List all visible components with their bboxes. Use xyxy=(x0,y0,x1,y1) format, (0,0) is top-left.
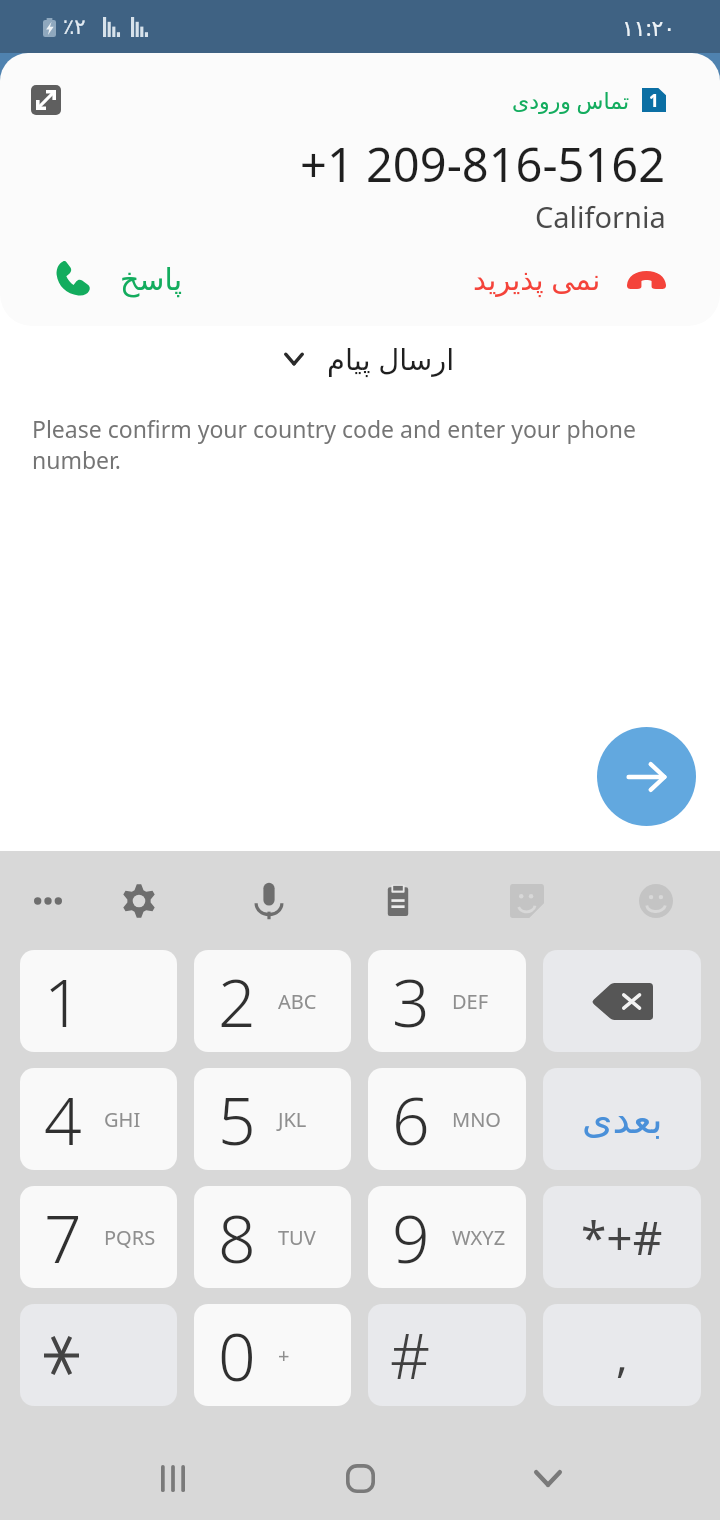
staticText: 6 xyxy=(392,1074,430,1164)
staticText: DEF xyxy=(452,988,489,1015)
button[interactable]: 9 xyxy=(368,1186,526,1288)
staticText: 2 xyxy=(218,956,256,1046)
button[interactable]: Emoji xyxy=(624,869,688,933)
staticText: + xyxy=(278,1342,290,1369)
button[interactable]: Expand xyxy=(31,85,61,115)
button[interactable]: *+# xyxy=(543,1186,701,1288)
button[interactable]: Clipboard xyxy=(366,869,430,933)
staticText: 7 xyxy=(44,1192,82,1282)
button[interactable]: Stickers xyxy=(495,869,559,933)
button[interactable]: نمی پذیرید xyxy=(473,259,666,301)
button[interactable]: 4 xyxy=(20,1068,177,1170)
button[interactable]: ارسال پیام xyxy=(0,326,720,390)
staticText: ارسال پیام xyxy=(327,339,455,378)
button[interactable]: Home xyxy=(322,1449,398,1507)
button[interactable]: 7 xyxy=(20,1186,177,1288)
staticText: تماس ورودی xyxy=(512,85,630,115)
button[interactable]: Next xyxy=(597,727,696,826)
button[interactable] xyxy=(20,1304,177,1406)
button[interactable]: 1 xyxy=(20,950,177,1052)
staticText: GHI xyxy=(104,1106,141,1133)
staticText: ABC xyxy=(278,988,317,1015)
button[interactable]: 6 xyxy=(368,1068,526,1170)
other: Backspace xyxy=(592,983,653,1020)
staticText: , xyxy=(616,1325,628,1385)
button[interactable]: , xyxy=(543,1304,701,1406)
staticText: 4 xyxy=(44,1074,82,1164)
button[interactable]: Voice input xyxy=(237,869,301,933)
button[interactable]: Recents xyxy=(135,1449,211,1507)
staticText: PQRS xyxy=(104,1224,156,1251)
button[interactable]: Backspace xyxy=(543,950,701,1052)
button[interactable]: 5 xyxy=(194,1068,351,1170)
staticText: JKL xyxy=(278,1106,307,1133)
staticText: Please confirm your country code and ent… xyxy=(32,413,692,476)
button[interactable]: پاسخ xyxy=(55,261,182,297)
staticText: 3 xyxy=(392,956,430,1046)
staticText: MNO xyxy=(452,1106,501,1133)
staticText: California xyxy=(535,197,666,236)
staticText: 8 xyxy=(218,1192,256,1282)
button[interactable]: # xyxy=(368,1304,526,1406)
button[interactable]: 3 xyxy=(368,950,526,1052)
staticText: ۱۱:۲۰ xyxy=(622,12,676,42)
staticText: ٪۲ xyxy=(63,15,86,39)
staticText: 0 xyxy=(218,1310,256,1400)
staticText: *+# xyxy=(581,1206,663,1269)
staticText: 5 xyxy=(218,1074,256,1164)
staticText: نمی پذیرید xyxy=(473,259,601,298)
staticText: TUV xyxy=(278,1224,316,1251)
button[interactable]: Settings xyxy=(107,869,171,933)
button[interactable]: Back xyxy=(510,1449,586,1507)
button[interactable]: More options xyxy=(16,869,80,933)
button[interactable]: 8 xyxy=(194,1186,351,1288)
staticText: WXYZ xyxy=(452,1224,506,1251)
staticText: پاسخ xyxy=(120,262,182,297)
button[interactable]: 0 xyxy=(194,1304,351,1406)
button[interactable]: بعدی xyxy=(543,1068,701,1170)
staticText: بعدی xyxy=(582,1097,663,1142)
staticText: 1 xyxy=(649,89,659,112)
staticText: 9 xyxy=(392,1192,430,1282)
staticText: +1 209-816-5162 xyxy=(300,132,666,196)
button[interactable]: 2 xyxy=(194,950,351,1052)
staticText: # xyxy=(390,1313,431,1397)
